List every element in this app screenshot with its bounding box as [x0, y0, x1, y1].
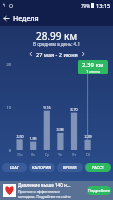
staticText: 28.99 км: [0, 29, 113, 43]
staticText: 9.16: [39, 105, 55, 110]
staticText: 20: [2, 62, 11, 67]
staticText: В среднем в день: 4.1: [0, 41, 113, 47]
staticText: Простые и эффективные методики. Подробне…: [18, 189, 71, 199]
staticText: Пт: [66, 152, 82, 157]
staticText: Сб: [80, 152, 96, 157]
staticText: Пн: [12, 152, 28, 157]
staticText: 0: [2, 148, 11, 153]
staticText: 2.50: [12, 134, 28, 139]
button[interactable]: Подробнее: [87, 186, 111, 195]
staticText: РАССТ: [92, 165, 105, 170]
button[interactable]: 2.39 км: [78, 60, 108, 74]
staticText: 1 июня: [86, 69, 100, 74]
staticText: 1.95: [25, 136, 41, 141]
staticText: 3.98: [52, 127, 68, 132]
staticText: 10: [2, 105, 11, 110]
button[interactable]: ШАГ: [2, 163, 27, 172]
staticText: Неделя: [13, 14, 39, 24]
button[interactable]: КАЛОРИЯ: [29, 163, 55, 172]
staticText: ШАГ: [10, 165, 19, 170]
button[interactable]: РАССТ: [85, 163, 111, 172]
button[interactable]: Back: [0, 12, 13, 25]
button[interactable]: Next week: [78, 49, 88, 59]
staticText: Ср: [39, 152, 55, 157]
staticText: 13:15: [96, 2, 111, 9]
staticText: Давление выше 140 н...: [18, 182, 71, 188]
staticText: ВРЕМЯ: [63, 165, 77, 170]
button[interactable]: Previous week: [26, 49, 36, 59]
staticText: КАЛОРИЯ: [32, 165, 52, 170]
button[interactable]: Давление выше 140 н...: [0, 181, 113, 200]
staticText: 27 мая - 2 июня: [36, 51, 78, 58]
staticText: 79%: [81, 3, 90, 9]
button[interactable]: ВРЕМЯ: [57, 163, 83, 172]
staticText: Вт: [25, 152, 41, 157]
staticText: Чт: [52, 152, 68, 157]
staticText: 2.39 км: [82, 61, 104, 69]
staticText: 2.39: [80, 134, 96, 139]
staticText: Подробнее: [88, 188, 111, 193]
staticText: 8.70: [66, 107, 82, 112]
